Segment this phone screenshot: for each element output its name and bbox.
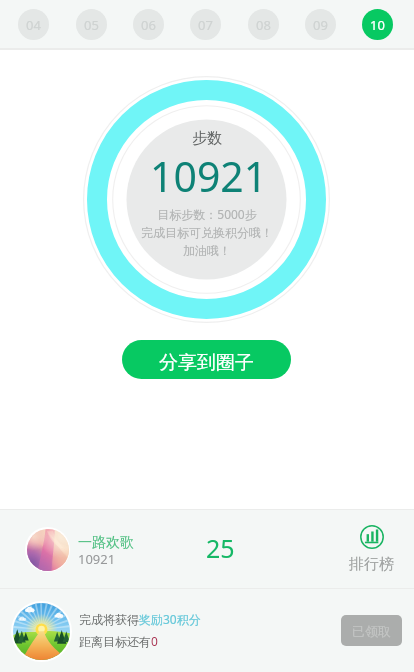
button[interactable]: 10 [349,0,406,48]
staticText: 05 [84,16,99,34]
staticText: 分享到圈子 [159,351,254,375]
staticText: 完成目标可兑换积分哦！ [141,225,273,240]
staticText: 25 [206,531,235,565]
button[interactable]: 08 [235,0,292,48]
staticText: 04 [26,16,41,34]
button[interactable]: 04 [5,0,62,48]
staticText: 一路欢歌 [78,534,134,552]
button[interactable]: 07 [177,0,234,48]
staticText: 10 [370,16,385,34]
staticText: 08 [256,16,271,34]
button[interactable]: 一路欢歌 [0,510,414,588]
staticText: 已领取 [352,623,391,639]
staticText: 排行榜 [349,555,394,574]
staticText: 距离目标还有0 [79,633,158,649]
staticText: 加油哦！ [183,243,231,258]
button[interactable]: 已领取 [341,615,402,646]
staticText: 步数 [192,129,222,148]
button[interactable]: 09 [292,0,349,48]
staticText: 09 [313,16,328,34]
staticText: 07 [198,16,213,34]
staticText: 目标步数：5000步 [157,206,257,222]
staticText: 完成将获得奖励30积分 [79,611,201,627]
staticText: 10921 [150,148,268,204]
staticText: 10921 [78,550,116,568]
staticText: 06 [141,16,156,34]
button[interactable]: 05 [63,0,120,48]
button[interactable]: 06 [120,0,177,48]
button[interactable]: 排行榜 [348,525,395,574]
button[interactable]: 分享到圈子 [122,340,291,379]
